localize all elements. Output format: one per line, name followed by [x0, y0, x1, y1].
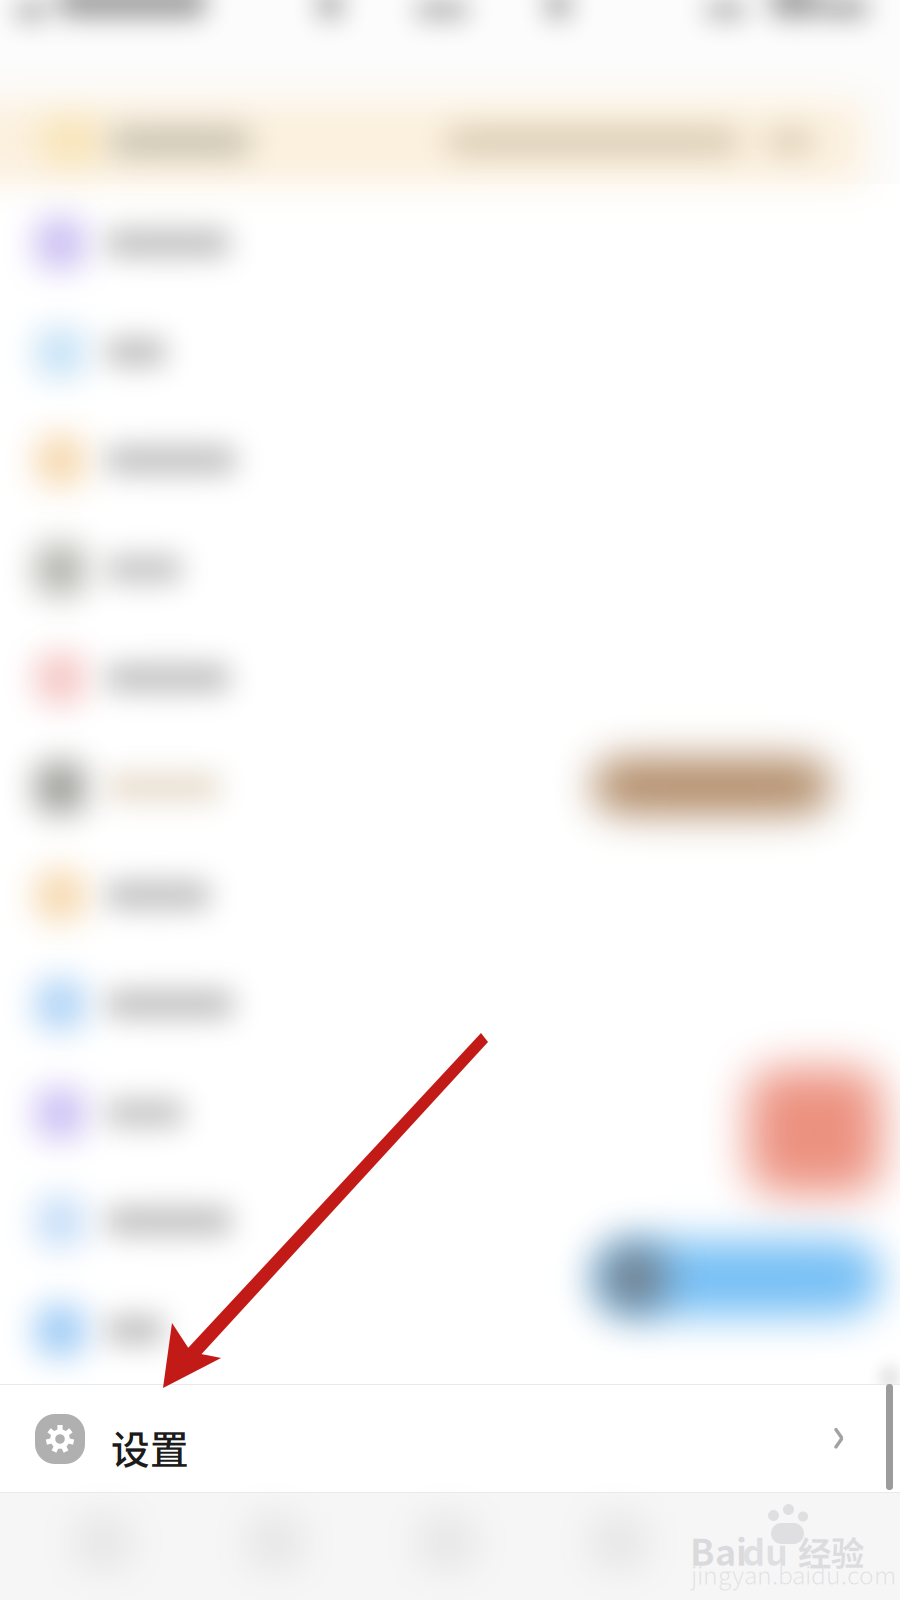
staticText: 经验 [798, 1527, 864, 1575]
staticText: 设置 [111, 1419, 189, 1475]
button[interactable]: 设置 [0, 1384, 900, 1493]
staticText: du [742, 1524, 788, 1576]
staticText: jingyan.baidu.com [691, 1556, 896, 1592]
staticText: Bai [690, 1524, 747, 1576]
